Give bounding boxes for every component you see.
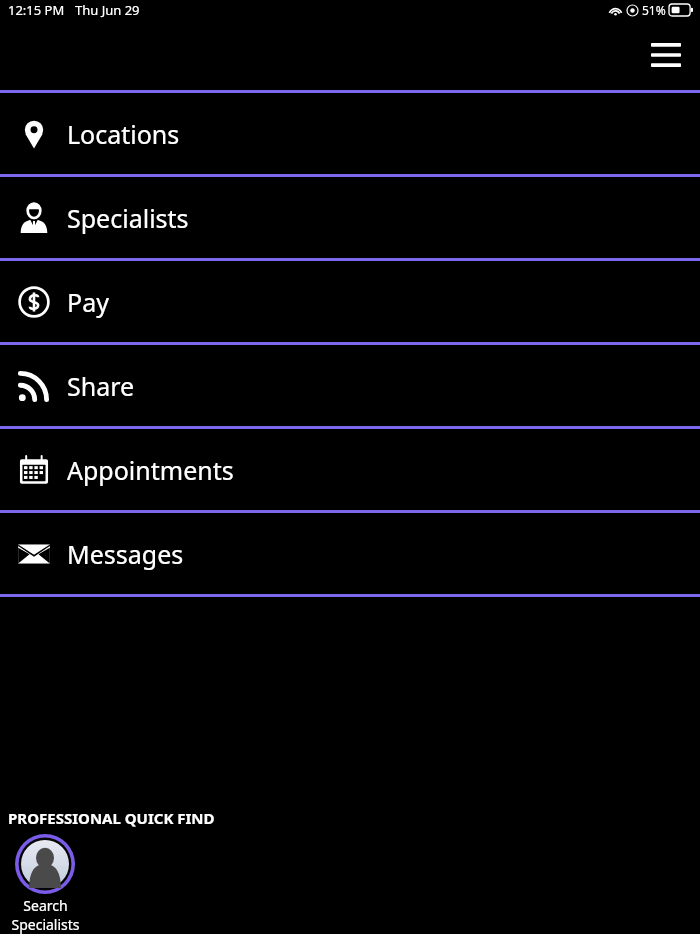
staticText: 12:15 PM (8, 1, 65, 19)
staticText: 51% (642, 2, 666, 18)
button[interactable]: Share (0, 345, 700, 426)
button[interactable]: Menu (642, 31, 690, 79)
staticText: Pay (67, 285, 109, 319)
button[interactable]: Locations (0, 93, 700, 174)
button[interactable]: Specialists (0, 177, 700, 258)
button[interactable]: Appointments (0, 429, 700, 510)
staticText: Search (23, 896, 68, 915)
staticText: Locations (67, 117, 180, 151)
staticText: PROFESSIONAL QUICK FIND (8, 808, 215, 828)
button[interactable]: Pay (0, 261, 700, 342)
staticText: Thu Jun 29 (75, 1, 140, 19)
button[interactable]: Search (8, 834, 82, 934)
button[interactable]: Messages (0, 513, 700, 594)
staticText: Specialists (67, 201, 189, 235)
staticText: Appointments (67, 453, 234, 487)
staticText: Messages (67, 537, 184, 571)
staticText: Share (67, 369, 135, 403)
staticText: Specialists (11, 915, 80, 934)
